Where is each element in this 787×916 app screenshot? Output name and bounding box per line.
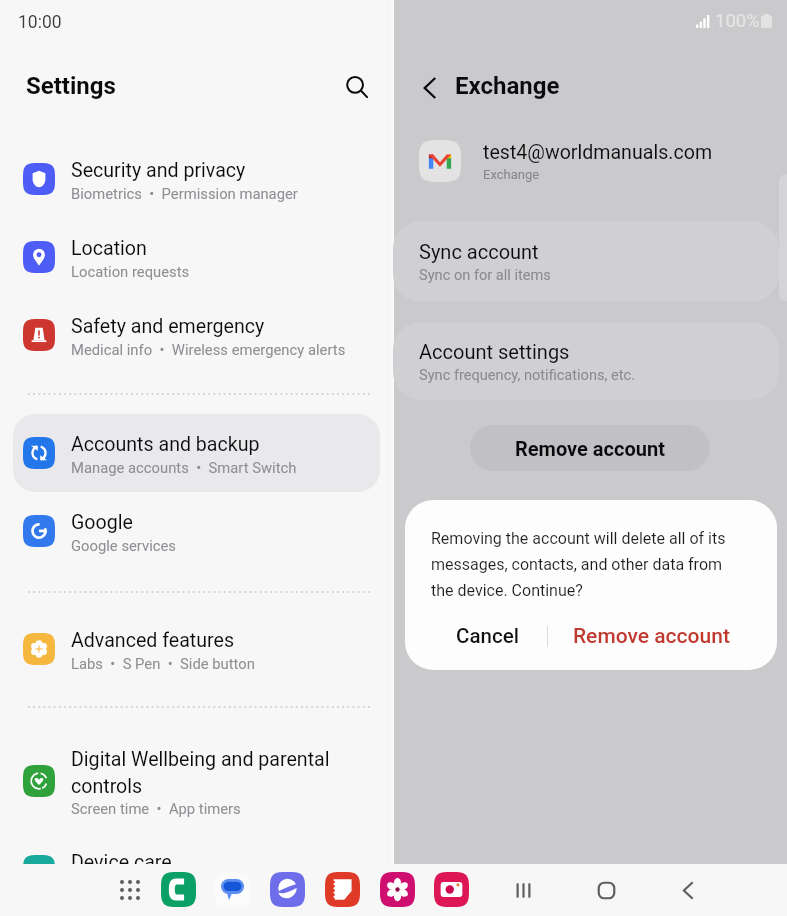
button[interactable]: Search: [336, 66, 378, 108]
staticText: Remove account: [515, 437, 665, 460]
button[interactable]: Home: [586, 870, 626, 910]
staticText: Exchange: [455, 72, 560, 100]
staticText: Medical info • Wireless emergency alerts: [71, 341, 346, 358]
staticText: Sync on for all items: [419, 266, 551, 283]
button[interactable]: Recents: [503, 870, 543, 910]
staticText: Sync frequency, notifications, etc.: [419, 366, 636, 383]
button[interactable]: Galaxy Store: [380, 872, 415, 907]
staticText: Device care: [71, 851, 172, 874]
button[interactable]: Samsung Notes: [325, 872, 360, 907]
button[interactable]: Back: [668, 870, 708, 910]
button[interactable]: Location: [0, 226, 393, 292]
staticText: Account settings: [419, 340, 570, 363]
button[interactable]: Security and privacy: [0, 148, 393, 214]
button[interactable]: Phone: [161, 872, 196, 907]
button[interactable]: Device care: [0, 840, 393, 906]
button[interactable]: Cancel: [427, 613, 548, 659]
staticText: Biometrics • Permission manager: [71, 185, 298, 202]
button[interactable]: Messages: [215, 872, 250, 907]
button[interactable]: Remove account: [470, 425, 710, 471]
staticText: Settings: [26, 72, 116, 100]
button[interactable]: Account settings: [393, 322, 779, 400]
staticText: Sync account: [419, 240, 539, 263]
staticText: Labs • S Pen • Side button: [71, 655, 255, 672]
button[interactable]: Google: [0, 500, 393, 566]
staticText: Screen time • App timers: [71, 800, 241, 817]
staticText: Removing the account will delete all of …: [431, 529, 743, 599]
button[interactable]: Internet: [270, 872, 305, 907]
staticText: test4@worldmanuals.com: [483, 141, 713, 164]
staticText: Accounts and backup: [71, 433, 260, 456]
staticText: Digital Wellbeing and parental controls: [71, 748, 330, 797]
staticText: Exchange: [483, 167, 540, 182]
button[interactable]: Advanced features: [0, 618, 393, 684]
staticText: Location requests: [71, 263, 190, 280]
staticText: Location: [71, 237, 147, 260]
button[interactable]: All apps: [113, 873, 147, 907]
button[interactable]: Safety and emergency: [0, 304, 393, 370]
staticText: Cancel: [456, 624, 519, 648]
staticText: 100%: [715, 10, 760, 32]
staticText: Google: [71, 511, 133, 534]
button[interactable]: Back: [410, 68, 450, 108]
button[interactable]: Camera: [434, 872, 469, 907]
staticText: 10:00: [18, 12, 62, 33]
button[interactable]: Accounts and backup: [0, 422, 393, 488]
button[interactable]: Remove account: [545, 613, 758, 659]
staticText: Manage accounts • Smart Switch: [71, 459, 297, 476]
staticText: Advanced features: [71, 629, 235, 652]
staticText: Safety and emergency: [71, 315, 265, 338]
staticText: Google services: [71, 537, 177, 554]
button[interactable]: Sync account: [393, 221, 779, 302]
staticText: Security and privacy: [71, 159, 246, 182]
button[interactable]: test4@worldmanuals.com: [393, 130, 787, 192]
staticText: Remove account: [573, 624, 730, 649]
button[interactable]: Digital Wellbeing and parental controls: [0, 737, 393, 833]
